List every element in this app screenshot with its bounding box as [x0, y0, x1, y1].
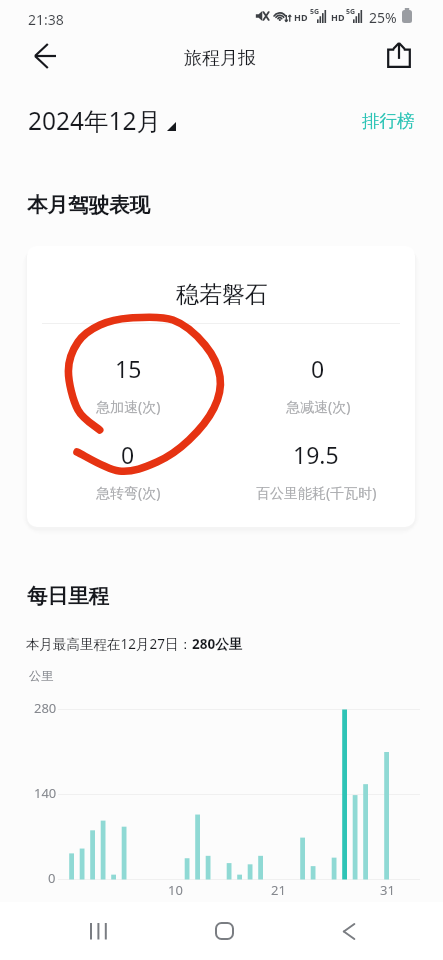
- staticText: 0: [311, 353, 325, 384]
- staticText: 21:38: [28, 10, 64, 29]
- button[interactable]: Share: [376, 32, 421, 77]
- staticText: 公里: [29, 668, 53, 683]
- staticText: 280公里: [192, 635, 243, 653]
- button[interactable]: 排行榜: [362, 110, 415, 132]
- staticText: 百公里能耗(千瓦时): [256, 483, 377, 502]
- staticText: 本月驾驶表现: [27, 192, 150, 218]
- staticText: HD: [294, 11, 308, 23]
- staticText: 10: [168, 881, 183, 899]
- staticText: 5G: [310, 7, 320, 17]
- staticText: 2024年12月: [28, 104, 162, 137]
- staticText: 排行榜: [362, 110, 415, 132]
- staticText: 280: [34, 699, 57, 717]
- staticText: 稳若磐石: [176, 280, 268, 309]
- staticText: 急加速(次): [96, 397, 161, 416]
- button[interactable]: Back: [23, 34, 67, 78]
- staticText: 5G: [346, 7, 356, 17]
- staticText: 0: [48, 869, 56, 887]
- staticText: 140: [34, 784, 57, 802]
- staticText: 25%: [369, 8, 397, 27]
- staticText: 19.5: [293, 439, 339, 470]
- staticText: 15: [115, 353, 142, 384]
- staticText: 21: [271, 881, 286, 899]
- staticText: 旅程月报: [184, 47, 256, 70]
- staticText: 本月最高里程在12月27日：: [26, 635, 192, 653]
- staticText: 0: [121, 439, 135, 470]
- staticText: 31: [380, 881, 395, 899]
- button[interactable]: 15: [33, 353, 223, 416]
- staticText: HD: [331, 11, 345, 23]
- button[interactable]: Home: [187, 908, 261, 954]
- staticText: 急转弯(次): [96, 483, 161, 502]
- button[interactable]: 0: [33, 439, 223, 502]
- staticText: 每日里程: [27, 583, 109, 609]
- button[interactable]: 19.5: [221, 439, 411, 502]
- button[interactable]: Recents: [62, 908, 136, 954]
- button[interactable]: Back: [311, 908, 385, 954]
- button[interactable]: 稳若磐石: [27, 246, 415, 527]
- button[interactable]: 0: [223, 353, 413, 416]
- staticText: 急减速(次): [286, 397, 351, 416]
- button[interactable]: 2024年12月: [28, 104, 176, 137]
